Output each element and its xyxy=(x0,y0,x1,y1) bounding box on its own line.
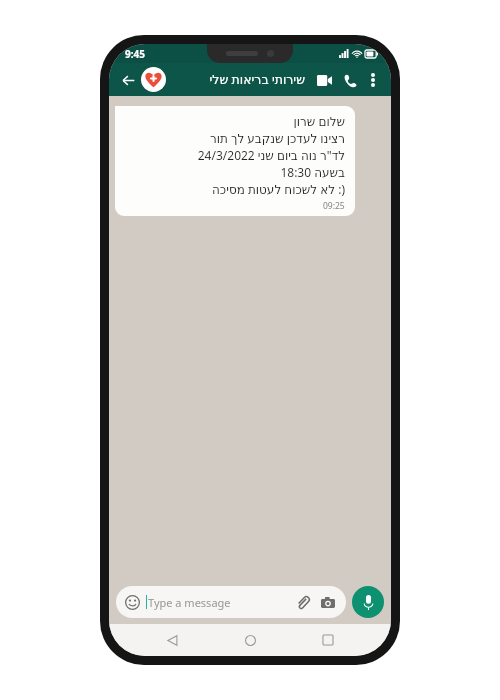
button[interactable]: Voice call xyxy=(339,69,361,91)
button[interactable]: Back xyxy=(157,625,187,655)
button[interactable]: Back xyxy=(117,69,139,91)
staticText: 09:25 xyxy=(323,200,345,212)
staticText: 9:45 xyxy=(125,47,145,61)
button[interactable]: Camera xyxy=(319,593,337,611)
staticText: שירותי בריאות שלי xyxy=(174,71,305,88)
button[interactable]: Home xyxy=(235,625,265,655)
button[interactable]: Recent apps xyxy=(313,625,343,655)
button[interactable]: Video call xyxy=(313,69,335,91)
button[interactable]: שלום שרון רצינו לעדכן שנקבע לך תור לד"ר … xyxy=(115,106,355,216)
button[interactable]: Record voice message xyxy=(352,586,384,618)
button[interactable]: Contact avatar xyxy=(141,67,166,92)
staticText: שלום שרון רצינו לעדכן שנקבע לך תור לד"ר … xyxy=(125,113,345,197)
button[interactable]: Attach xyxy=(293,593,311,611)
button[interactable]: More options xyxy=(363,70,383,90)
staticText: Type a message xyxy=(148,595,293,610)
button[interactable]: Type a message xyxy=(116,586,346,618)
